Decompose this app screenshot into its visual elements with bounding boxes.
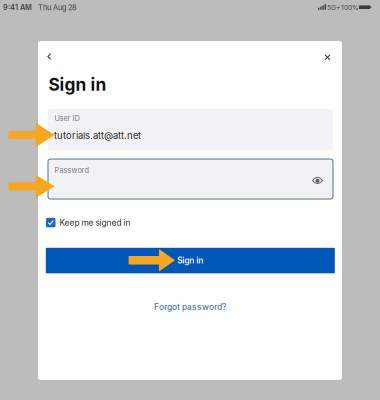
staticText: Sign in [177,255,203,266]
button[interactable]: Show password [307,170,327,190]
staticText: Password [54,166,88,175]
staticText: 9:41 AM [3,3,32,12]
staticText: Sign in [48,74,106,95]
button[interactable]: Keep me signed in [46,215,130,230]
staticText: 5G+ [327,3,340,12]
staticText: tutorials.att@att.net [54,130,141,141]
staticText: 100% [341,3,359,12]
staticText: User ID [54,114,79,123]
button[interactable]: Back [39,46,59,66]
button[interactable]: Forgot password? [38,300,342,314]
staticText: Forgot password? [154,302,226,312]
button[interactable]: Close [317,47,337,67]
staticText: Thu Aug 28 [38,3,77,12]
button[interactable]: Sign in [46,248,335,273]
staticText: Keep me signed in [59,217,130,228]
